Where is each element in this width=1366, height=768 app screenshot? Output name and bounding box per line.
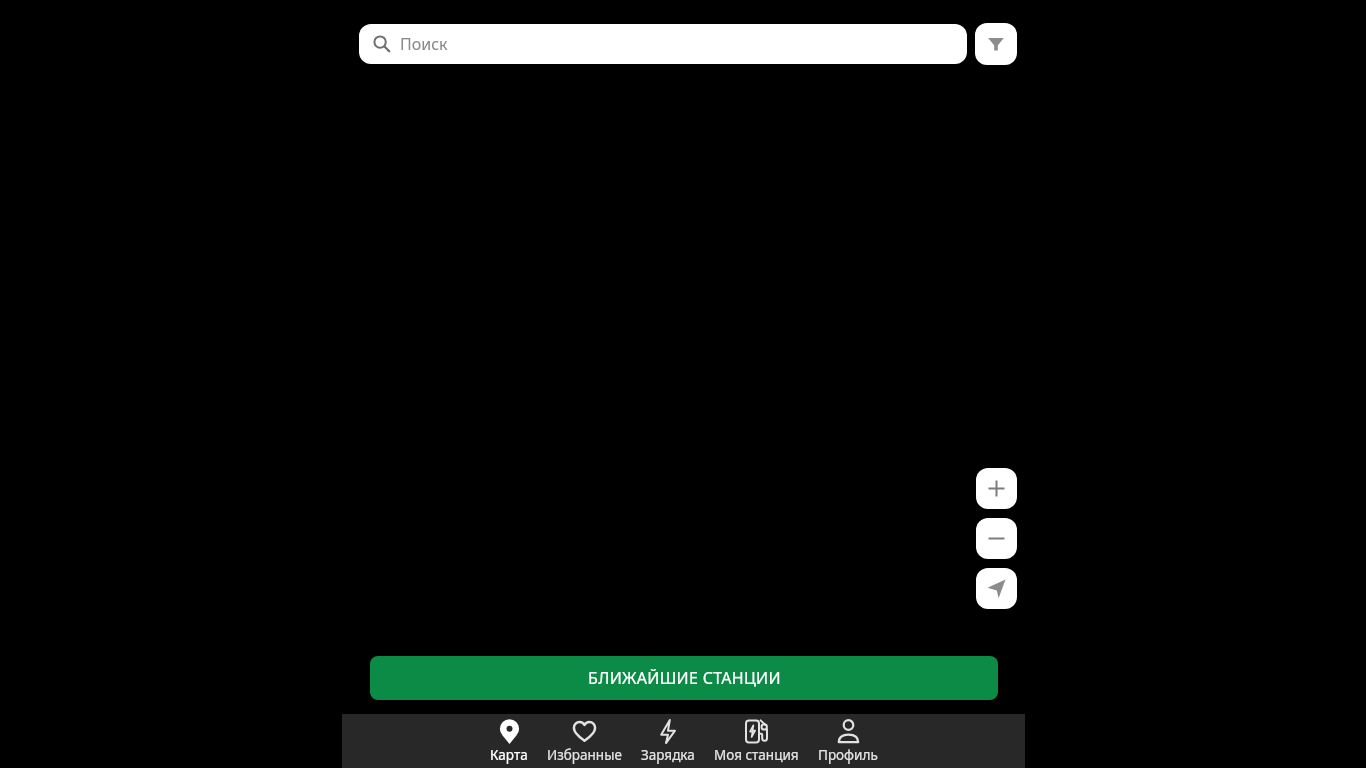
staticText: Поиск xyxy=(400,33,448,55)
button[interactable] xyxy=(976,468,1017,509)
button[interactable]: Карта xyxy=(490,719,528,764)
staticText: Профиль xyxy=(818,746,878,764)
button[interactable] xyxy=(976,568,1017,609)
button[interactable] xyxy=(976,518,1017,559)
staticText: Моя станция xyxy=(714,746,799,764)
button[interactable]: Профиль xyxy=(818,719,878,764)
staticText: БЛИЖАЙШИЕ СТАНЦИИ xyxy=(588,667,781,689)
staticText: Карта xyxy=(490,746,528,764)
button[interactable]: Поиск xyxy=(359,24,967,64)
button[interactable]: Избранные xyxy=(547,719,622,764)
staticText: Избранные xyxy=(547,746,622,764)
button[interactable]: Зарядка xyxy=(641,719,695,764)
button[interactable] xyxy=(975,23,1017,65)
button[interactable]: Моя станция xyxy=(714,719,799,764)
staticText: Зарядка xyxy=(641,746,695,764)
button[interactable]: БЛИЖАЙШИЕ СТАНЦИИ xyxy=(370,656,998,700)
